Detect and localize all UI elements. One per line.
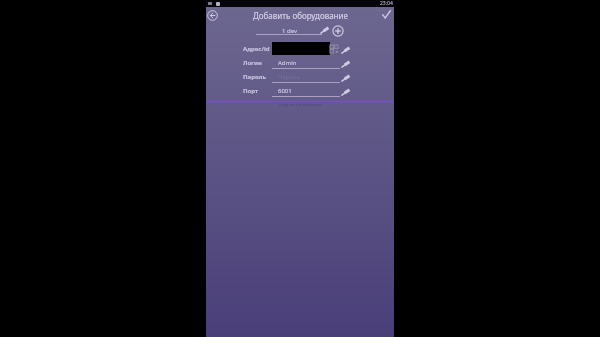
button[interactable]: Edit	[340, 58, 351, 69]
button[interactable]: Admin	[272, 56, 340, 70]
button[interactable]: Back	[203, 6, 221, 24]
button[interactable]: Edit	[340, 44, 351, 55]
staticText: Admin	[278, 59, 297, 67]
staticText: Порт	[243, 87, 259, 95]
staticText: 6001	[278, 87, 292, 95]
button[interactable]: 6001	[272, 84, 340, 98]
staticText: 1 dev	[282, 27, 297, 35]
staticText: Добавить оборудование	[253, 10, 348, 21]
button[interactable]: Edit	[340, 72, 351, 83]
button[interactable]: Scan QR code	[329, 44, 339, 54]
staticText: Drag me for refreshed	[279, 102, 321, 107]
staticText: Пароль	[278, 73, 300, 81]
button[interactable]: 1 dev	[256, 26, 322, 35]
button[interactable]: Edit	[340, 86, 351, 97]
staticText: Логин	[243, 59, 262, 67]
staticText: 23:04	[380, 0, 393, 7]
button[interactable]: Edit	[319, 24, 330, 35]
button[interactable]: Save	[377, 5, 395, 23]
staticText: Пароль	[243, 73, 266, 81]
staticText: Адрес/id	[243, 45, 270, 53]
button[interactable]: Пароль	[272, 70, 340, 84]
button[interactable]: Add device	[331, 24, 345, 38]
